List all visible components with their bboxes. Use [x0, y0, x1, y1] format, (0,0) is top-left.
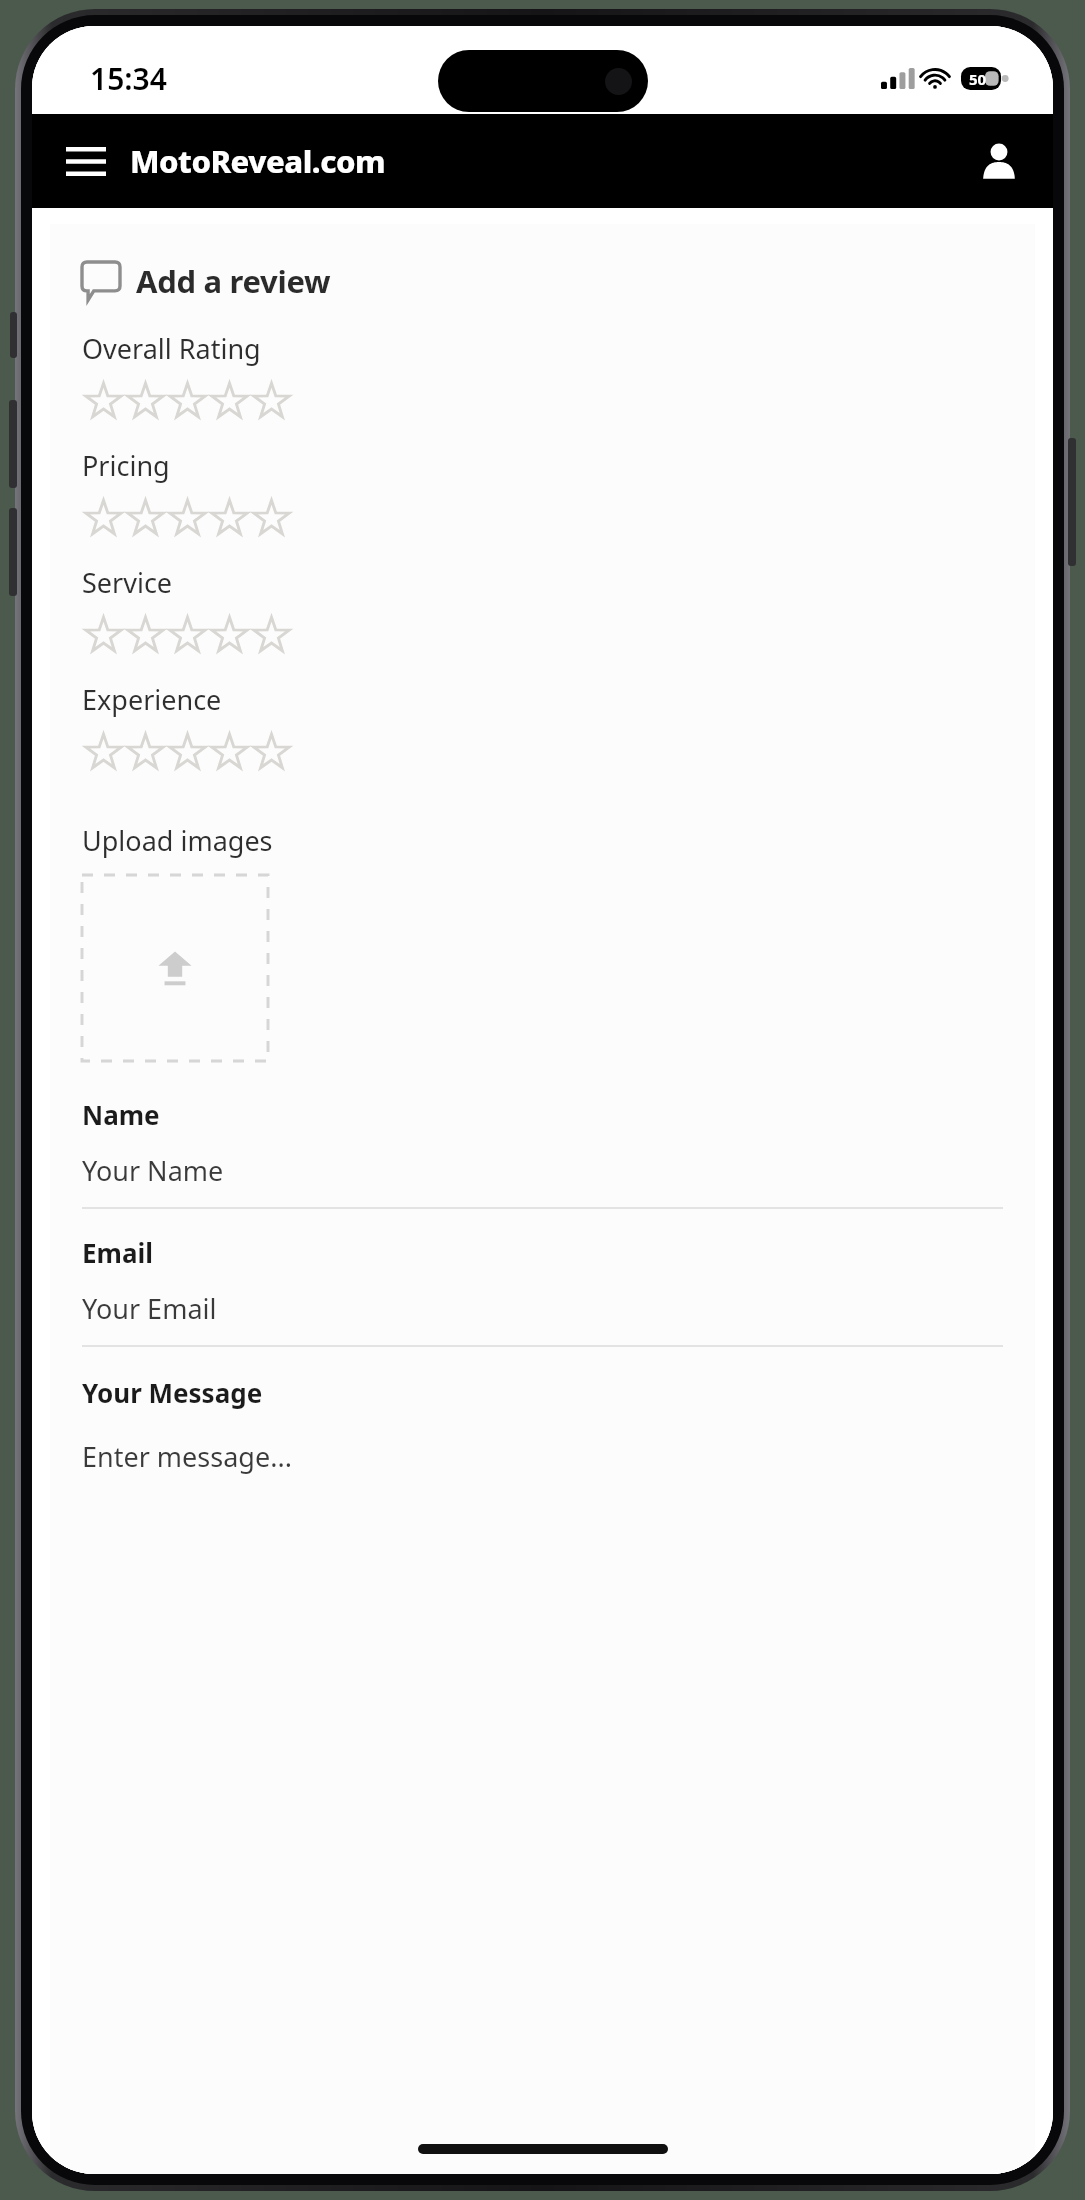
button[interactable]: Overall Rating 3 star — [166, 377, 208, 423]
staticText: Enter message... — [82, 1438, 292, 1475]
staticText: 15:34 — [90, 58, 167, 99]
button[interactable]: Service 1 star — [82, 611, 124, 657]
button[interactable]: Experience 5 star — [250, 728, 292, 774]
button[interactable]: Overall Rating 5 star — [250, 377, 292, 423]
button[interactable]: Account — [971, 133, 1027, 189]
staticText: Name — [82, 1097, 160, 1132]
staticText: Upload images — [82, 822, 273, 859]
staticText: Pricing — [82, 447, 170, 484]
button[interactable]: Your Email — [82, 1290, 1003, 1347]
button[interactable]: Overall Rating 4 star — [208, 377, 250, 423]
button[interactable]: Overall Rating 2 star — [124, 377, 166, 423]
button[interactable]: Pricing 2 star — [124, 494, 166, 540]
button[interactable]: Service 5 star — [250, 611, 292, 657]
button[interactable]: Service 2 star — [124, 611, 166, 657]
button[interactable]: MotoReveal.com — [130, 140, 386, 182]
button[interactable]: Your Name — [82, 1152, 1003, 1209]
staticText: Email — [82, 1235, 154, 1270]
button[interactable]: Upload images — [82, 875, 268, 1061]
button[interactable]: Enter message... — [82, 1438, 1003, 1548]
button[interactable]: Service 3 star — [166, 611, 208, 657]
button[interactable]: Service 4 star — [208, 611, 250, 657]
button[interactable]: Open menu — [58, 133, 114, 189]
button[interactable]: Experience 4 star — [208, 728, 250, 774]
staticText: Your Email — [82, 1290, 217, 1327]
staticText: Overall Rating — [82, 330, 261, 367]
button[interactable]: Pricing 1 star — [82, 494, 124, 540]
button[interactable]: Pricing 4 star — [208, 494, 250, 540]
staticText: Your Message — [82, 1375, 263, 1410]
staticText: Experience — [82, 681, 222, 718]
staticText: Add a review — [136, 260, 331, 302]
staticText: Your Name — [82, 1152, 224, 1189]
button[interactable]: Experience 1 star — [82, 728, 124, 774]
staticText: 50 — [969, 69, 987, 89]
button[interactable]: Overall Rating 1 star — [82, 377, 124, 423]
button[interactable]: Experience 2 star — [124, 728, 166, 774]
button[interactable]: Pricing 3 star — [166, 494, 208, 540]
staticText: Service — [82, 564, 173, 601]
button[interactable]: Pricing 5 star — [250, 494, 292, 540]
button[interactable]: Experience 3 star — [166, 728, 208, 774]
